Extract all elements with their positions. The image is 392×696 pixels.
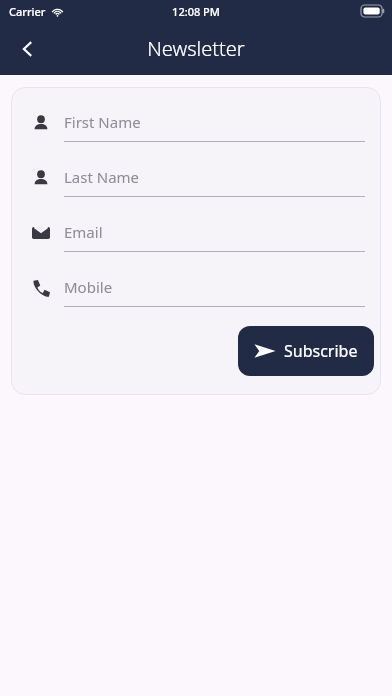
button[interactable]: Mobile [11,260,381,315]
staticText: 12:08 PM [172,4,220,19]
button[interactable]: Email [11,205,381,260]
button[interactable]: First Name [11,95,381,150]
staticText: Email [64,222,103,242]
staticText: Carrier [9,4,46,19]
button[interactable]: Last Name [11,150,381,205]
button[interactable]: Subscribe [238,326,374,376]
staticText: Mobile [64,277,113,297]
staticText: Last Name [64,167,140,187]
staticText: Subscribe [284,340,358,362]
button[interactable]: Back [8,29,48,69]
staticText: First Name [64,112,141,132]
staticText: Newsletter [147,35,245,62]
